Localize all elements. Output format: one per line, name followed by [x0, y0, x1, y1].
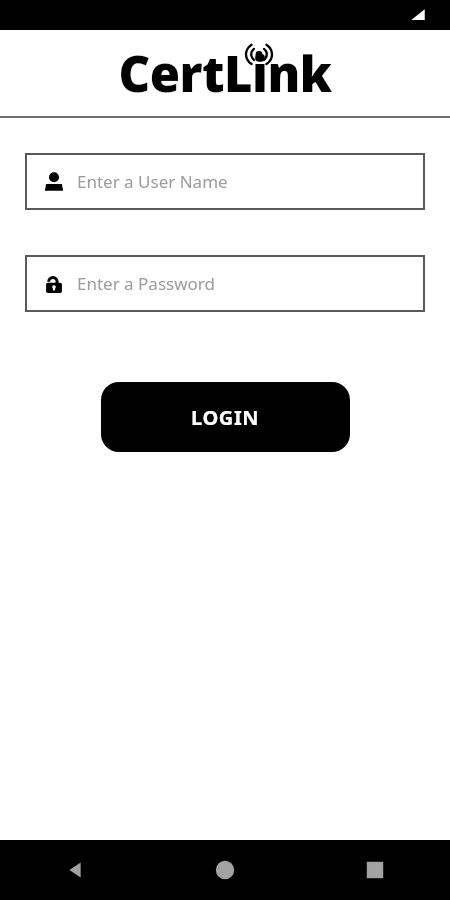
staticText: LOGIN [191, 404, 260, 431]
button[interactable]: Enter a User Name [25, 153, 425, 210]
button[interactable]: Enter a Password [25, 255, 425, 312]
button[interactable]: Recent apps [300, 840, 450, 900]
button[interactable]: Home [150, 840, 300, 900]
button[interactable]: LOGIN [101, 382, 350, 452]
staticText: CertLink [118, 40, 332, 107]
staticText: Enter a User Name [77, 170, 228, 193]
button[interactable]: Back [0, 840, 150, 900]
staticText: Enter a Password [77, 272, 215, 295]
